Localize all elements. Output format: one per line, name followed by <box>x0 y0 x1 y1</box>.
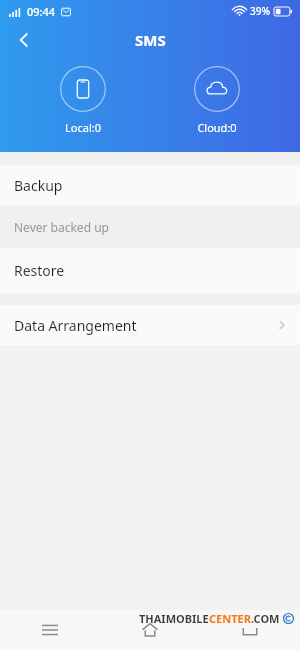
staticText: Never backed up <box>14 219 109 235</box>
staticText: 39% <box>250 4 270 18</box>
staticText: Data Arrangement <box>14 316 137 335</box>
staticText: 09:44 <box>27 4 56 19</box>
button[interactable]: Backup <box>0 165 300 205</box>
button[interactable]: Restore <box>0 248 300 293</box>
staticText: Backup <box>14 176 63 195</box>
button[interactable]: Recent apps <box>0 610 100 650</box>
button[interactable]: Home <box>100 610 200 650</box>
button[interactable]: Back <box>200 610 300 650</box>
staticText: Local:0 <box>65 120 101 135</box>
staticText: SMS <box>135 30 166 50</box>
staticText: THAIMOBILE <box>139 611 209 626</box>
staticText: .COM <box>251 611 280 626</box>
button[interactable]: Data Arrangement <box>0 305 300 345</box>
staticText: Cloud:0 <box>197 120 237 135</box>
staticText: Restore <box>14 261 65 280</box>
button[interactable]: Cloud:0 <box>167 66 267 135</box>
button[interactable]: Local:0 <box>33 66 133 135</box>
staticText: CENTER <box>209 611 251 626</box>
button[interactable]: Back <box>6 22 42 58</box>
